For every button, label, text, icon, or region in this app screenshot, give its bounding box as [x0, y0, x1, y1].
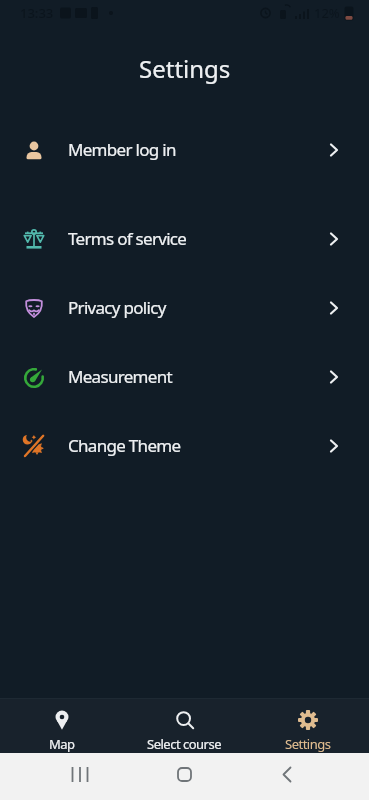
button[interactable]	[246, 753, 369, 800]
button[interactable]: Member log in	[0, 115, 369, 184]
staticText: Member log in	[68, 138, 176, 161]
staticText: Select course	[147, 735, 222, 753]
button[interactable]: Terms of service	[0, 204, 369, 273]
staticText: Privacy policy	[68, 296, 166, 319]
button[interactable]	[0, 753, 123, 800]
staticText: Change Theme	[68, 434, 181, 457]
staticText: Map	[49, 735, 75, 753]
button[interactable]: Select course	[123, 699, 246, 753]
button[interactable]: Measurement	[0, 342, 369, 411]
button[interactable]: Change Theme	[0, 411, 369, 480]
staticText: Measurement	[68, 365, 172, 388]
button[interactable]: Settings	[246, 699, 369, 753]
staticText: Settings	[285, 735, 331, 753]
staticText: Settings	[139, 52, 231, 85]
button[interactable]	[123, 753, 246, 800]
button[interactable]: Privacy policy	[0, 273, 369, 342]
button[interactable]: Map	[0, 699, 123, 753]
staticText: Terms of service	[68, 227, 187, 250]
